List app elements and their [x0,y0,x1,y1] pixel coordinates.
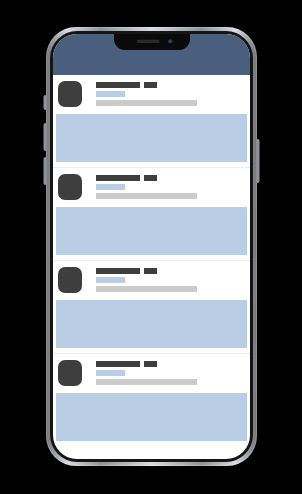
other: Avatar placeholder [58,267,82,293]
other: Avatar placeholder [58,174,82,200]
button[interactable]: Avatar placeholder [53,75,250,167]
button[interactable]: Avatar placeholder [53,168,250,260]
button[interactable]: Avatar placeholder [53,354,250,446]
other: Avatar placeholder [58,81,82,107]
button[interactable]: Avatar placeholder [53,261,250,353]
other: Avatar placeholder [58,360,82,386]
